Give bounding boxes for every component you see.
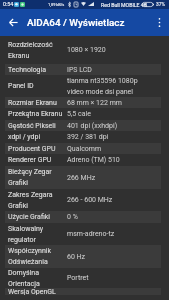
staticText: 1,89 kB/s	[48, 2, 65, 7]
staticText: Domyślna Orientacja	[8, 269, 64, 288]
staticText: Przekątna Ekranu	[8, 110, 64, 118]
staticText: Rozdzielczość Ekranu	[8, 41, 64, 60]
staticText: Technologia	[8, 66, 64, 74]
staticText: IPS LCD	[67, 66, 140, 74]
button[interactable]: Back	[0, 9, 27, 36]
button[interactable]: More options	[150, 9, 169, 36]
button[interactable]: Producent GPU	[5, 143, 161, 154]
staticText: Rozmiar Ekranu	[8, 99, 64, 107]
staticText: Wersja OpenGL	[8, 288, 64, 295]
staticText: Renderer GPU	[8, 156, 64, 164]
staticText: 0 %	[67, 213, 140, 221]
staticText: xdpi / ydpi	[8, 133, 64, 141]
staticText: 5,5 cale	[67, 110, 140, 118]
staticText: Portret	[67, 274, 140, 282]
staticText: Producent GPU	[8, 145, 64, 153]
staticText: 266 - 600 MHz	[67, 196, 140, 204]
staticText: 0:54	[3, 1, 14, 7]
staticText: 37%	[156, 2, 165, 8]
button[interactable]: Technologia	[5, 64, 161, 75]
staticText: 266 MHz	[67, 174, 140, 182]
button[interactable]: Użycie Grafiki	[5, 211, 161, 223]
staticText: msm-adreno-tz	[67, 230, 140, 238]
button[interactable]: Gęstość Pikseli	[5, 120, 161, 131]
staticText: Qualcomm	[67, 145, 140, 153]
staticText: Red Bull MOBILE 4G	[101, 2, 148, 8]
staticText: Adreno (TM) 510	[67, 156, 140, 164]
staticText: 392 / 381 dpi	[67, 133, 140, 141]
button[interactable]: Domyślna Orientacja	[5, 268, 161, 288]
button[interactable]: Rozdzielczość Ekranu	[5, 36, 161, 64]
staticText: Zakres Zegara Grafiki	[8, 191, 64, 210]
staticText: Gęstość Pikseli	[8, 122, 64, 130]
staticText: 60 Hz	[67, 253, 140, 261]
staticText: 68 mm × 122 mm	[67, 99, 140, 107]
staticText: 401 dpi (xxhdpi)	[67, 122, 140, 130]
button[interactable]: xdpi / ydpi	[5, 131, 161, 143]
staticText: Użycie Grafiki	[8, 213, 64, 221]
button[interactable]: Przekątna Ekranu	[5, 108, 161, 120]
button[interactable]: Wersja OpenGL	[5, 288, 161, 295]
button[interactable]: Bieżący Zegar Grafiki	[5, 166, 161, 189]
button[interactable]: Współczynnik Odświeżania	[5, 245, 161, 268]
button[interactable]: Renderer GPU	[5, 154, 161, 166]
staticText: Współczynnik Odświeżania	[8, 247, 64, 266]
button[interactable]: Zakres Zegara Grafiki	[5, 189, 161, 211]
staticText: Bieżący Zegar Grafiki	[8, 168, 64, 187]
staticText: Panel ID	[8, 82, 64, 90]
button[interactable]: Panel ID	[5, 75, 161, 97]
staticText: Skalowalny regulator	[8, 225, 64, 244]
staticText: tianma nt35596 1080p video mode dsi pane…	[67, 77, 140, 96]
staticText: 1080 × 1920	[67, 46, 140, 54]
button[interactable]: Skalowalny regulator	[5, 223, 161, 245]
button[interactable]: Rozmiar Ekranu	[5, 97, 161, 108]
staticText: AIDA64 / Wyświetlacz	[27, 17, 125, 29]
